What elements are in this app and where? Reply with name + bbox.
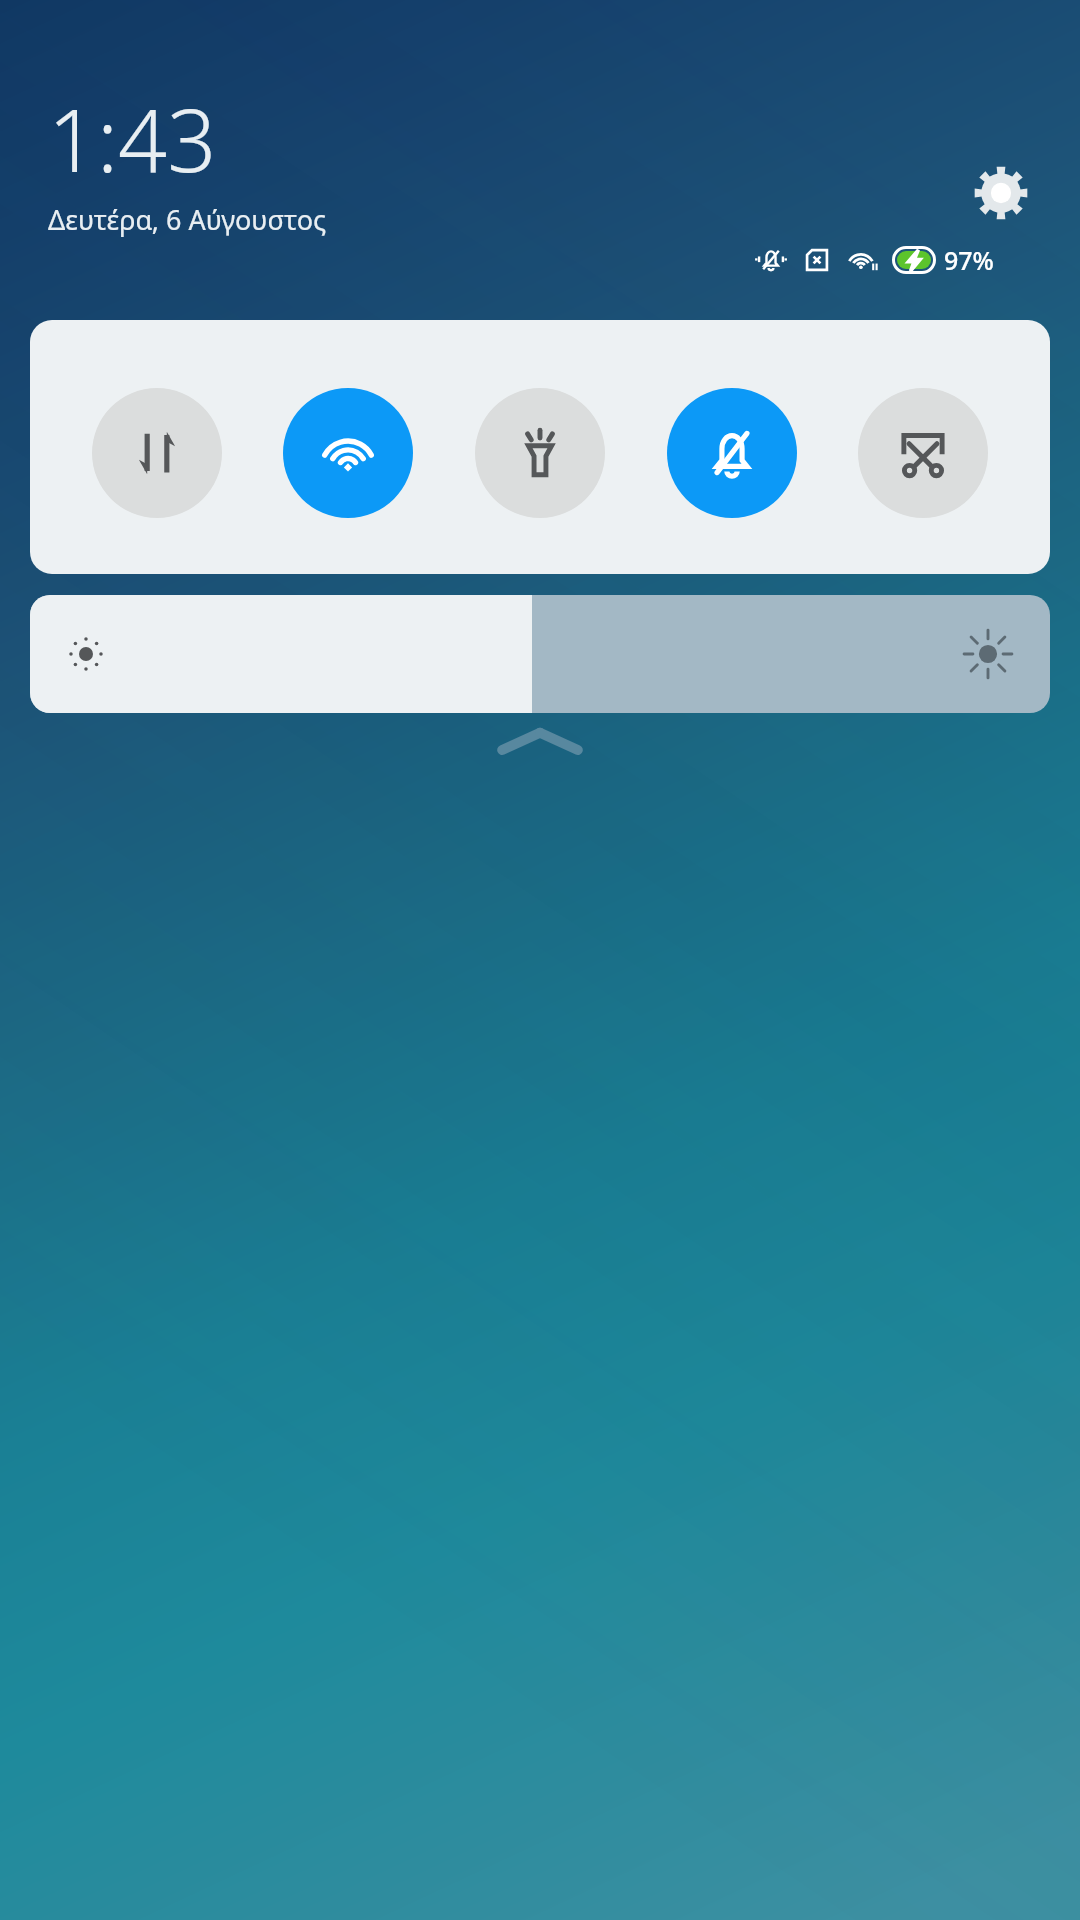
staticText: 1:43	[48, 80, 217, 197]
staticText: 97%	[944, 243, 994, 277]
staticText: Δευτέρα, 6 Αύγουστος	[48, 201, 327, 238]
button[interactable]: Screenshot	[858, 388, 988, 518]
button[interactable]: Settings	[966, 158, 1036, 228]
button[interactable]: Flashlight	[475, 388, 605, 518]
button[interactable]: Silent mode	[667, 388, 797, 518]
button[interactable]: Wi-Fi	[283, 388, 413, 518]
button[interactable]: Brightness	[30, 595, 1050, 713]
button[interactable]: Expand quick settings	[0, 727, 1080, 777]
button[interactable]: Mobile data	[92, 388, 222, 518]
